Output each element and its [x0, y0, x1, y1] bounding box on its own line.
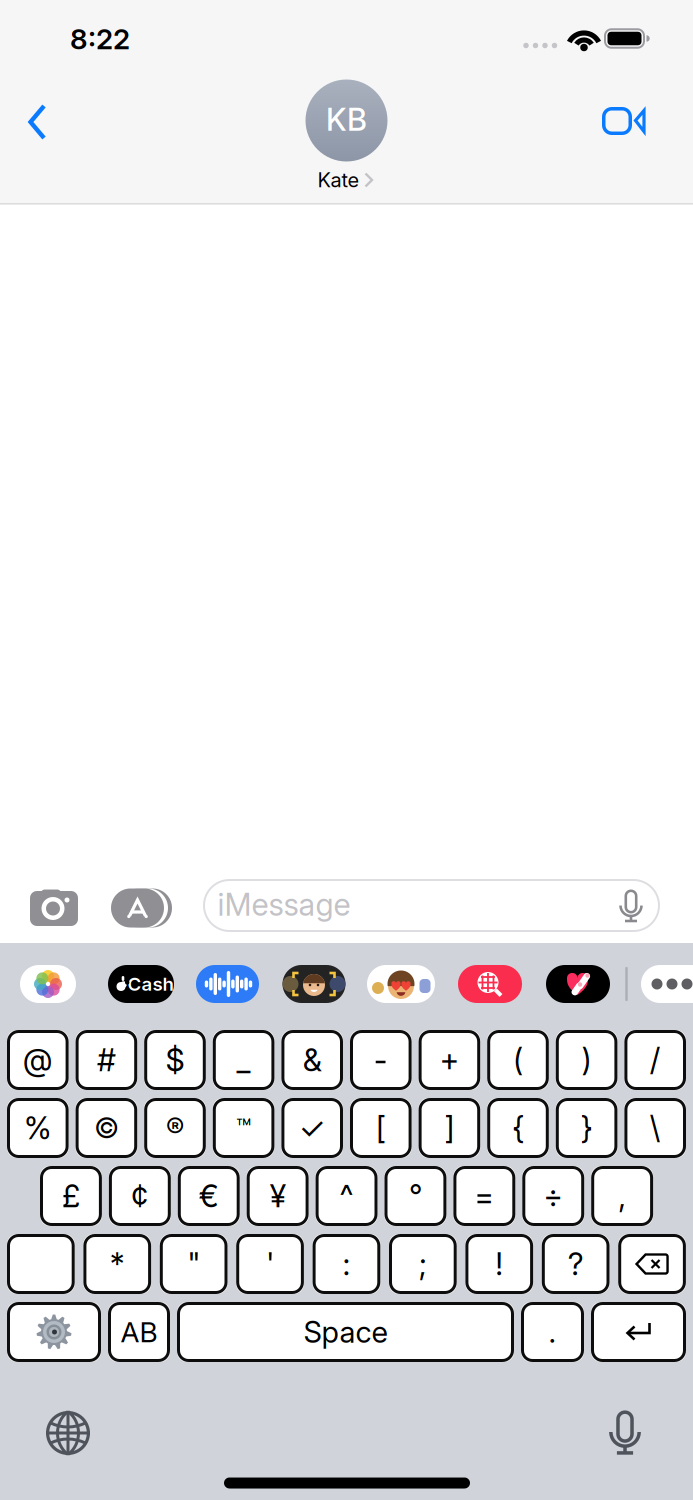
button[interactable]: \: [624, 1098, 686, 1158]
staticText: ™: [236, 1113, 251, 1143]
staticText: #: [97, 1041, 116, 1078]
staticText: KB: [326, 101, 367, 138]
button[interactable]: }: [556, 1098, 617, 1158]
button[interactable]: ¢: [109, 1166, 171, 1226]
button[interactable]: :: [313, 1234, 380, 1294]
button[interactable]: &: [281, 1030, 343, 1090]
button[interactable]: !: [465, 1234, 533, 1294]
staticText: :: [342, 1245, 350, 1282]
button[interactable]: [7, 1234, 75, 1294]
button[interactable]: Return: [591, 1302, 686, 1362]
button[interactable]: ^: [316, 1166, 377, 1226]
button[interactable]: Next keyboard: [42, 1407, 94, 1459]
button[interactable]: @: [7, 1030, 69, 1090]
button[interactable]: Photos: [20, 965, 76, 1003]
button[interactable]: Camera: [28, 886, 80, 928]
staticText: }: [581, 1109, 593, 1146]
button[interactable]: $: [144, 1030, 206, 1090]
staticText: £: [62, 1177, 80, 1214]
button[interactable]: ;: [389, 1234, 457, 1294]
button[interactable]: (: [487, 1030, 549, 1090]
button[interactable]: ?: [542, 1234, 609, 1294]
staticText: ;: [419, 1245, 427, 1282]
staticText: .: [548, 1314, 556, 1350]
button[interactable]: AB: [108, 1302, 170, 1362]
staticText: ]: [444, 1109, 454, 1146]
button[interactable]: Apps: [111, 888, 175, 928]
button[interactable]: %: [7, 1098, 69, 1158]
button[interactable]: ®: [144, 1098, 206, 1158]
button[interactable]: ": [160, 1234, 227, 1294]
button[interactable]: ©: [76, 1098, 137, 1158]
button[interactable]: [: [350, 1098, 412, 1158]
staticText: ¥: [270, 1177, 286, 1214]
staticText: {: [512, 1109, 524, 1146]
button[interactable]: £: [40, 1166, 102, 1226]
button[interactable]: Digital Touch: [546, 965, 610, 1003]
button[interactable]: Space: [177, 1302, 514, 1362]
staticText: ✓: [299, 1109, 326, 1146]
staticText: ®: [166, 1111, 184, 1145]
button[interactable]: FaceTime video: [597, 101, 653, 141]
button[interactable]: =: [453, 1166, 515, 1226]
button[interactable]: ,: [591, 1166, 653, 1226]
button[interactable]: .: [521, 1302, 584, 1362]
staticText: @: [23, 1041, 53, 1078]
staticText: -: [374, 1041, 388, 1078]
staticText: Space: [303, 1314, 387, 1350]
staticText: %: [24, 1109, 52, 1146]
button[interactable]: °: [384, 1166, 446, 1226]
staticText: /: [650, 1041, 661, 1078]
staticText: \: [650, 1109, 661, 1146]
button[interactable]: Apple Cash: [108, 965, 174, 1003]
button[interactable]: ¥: [247, 1166, 309, 1226]
button[interactable]: Music: [196, 965, 259, 1003]
staticText: Cash: [127, 973, 173, 995]
staticText: &: [303, 1041, 322, 1078]
button[interactable]: Kate, contact details: [286, 75, 406, 200]
staticText: =: [474, 1177, 494, 1214]
button[interactable]: ]: [419, 1098, 480, 1158]
staticText: ÷: [543, 1177, 563, 1214]
staticText: _: [237, 1041, 251, 1078]
button[interactable]: -: [350, 1030, 412, 1090]
button[interactable]: #: [76, 1030, 137, 1090]
button[interactable]: Delete: [618, 1234, 686, 1294]
staticText: °: [409, 1177, 422, 1214]
staticText: iMessage: [217, 886, 350, 923]
staticText: !: [495, 1245, 503, 1282]
button[interactable]: #images: [458, 965, 522, 1003]
staticText: +: [439, 1041, 459, 1078]
staticText: ?: [568, 1245, 584, 1282]
staticText: (: [513, 1041, 523, 1078]
button[interactable]: ): [556, 1030, 617, 1090]
button[interactable]: _: [213, 1030, 274, 1090]
button[interactable]: +: [419, 1030, 480, 1090]
staticText: ^: [340, 1177, 354, 1214]
button[interactable]: ÷: [522, 1166, 584, 1226]
button[interactable]: €: [178, 1166, 240, 1226]
staticText: $: [165, 1041, 184, 1078]
staticText: ): [582, 1041, 592, 1078]
button[interactable]: *: [83, 1234, 151, 1294]
staticText: [: [376, 1109, 386, 1146]
button[interactable]: {: [487, 1098, 549, 1158]
button[interactable]: Memoji camera: [282, 965, 345, 1003]
button[interactable]: Settings: [7, 1302, 101, 1362]
staticText: €: [199, 1177, 219, 1214]
button[interactable]: More apps: [641, 965, 693, 1003]
button[interactable]: Memoji stickers: [367, 965, 435, 1003]
staticText: AB: [120, 1315, 157, 1349]
button[interactable]: Dictation: [604, 1408, 646, 1456]
button[interactable]: /: [624, 1030, 686, 1090]
button[interactable]: ': [236, 1234, 304, 1294]
button[interactable]: ✓: [281, 1098, 343, 1158]
staticText: ': [266, 1245, 274, 1282]
button[interactable]: Back: [7, 92, 67, 152]
staticText: ,: [618, 1177, 626, 1214]
staticText: ©: [94, 1111, 119, 1145]
button[interactable]: iMessage text field: [203, 879, 660, 932]
staticText: 8:22: [70, 22, 130, 56]
button[interactable]: ™: [213, 1098, 274, 1158]
staticText: ¢: [131, 1177, 148, 1214]
